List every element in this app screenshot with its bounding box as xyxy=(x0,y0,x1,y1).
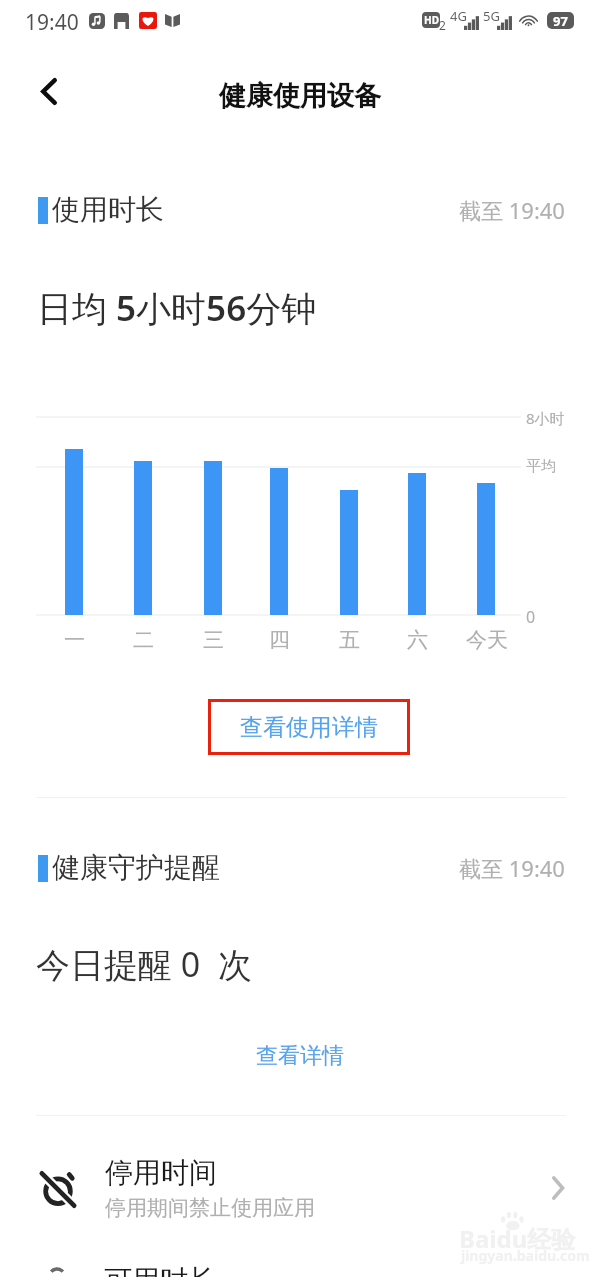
button[interactable]: 查看使用详情 xyxy=(208,699,410,755)
staticText: 可用时长 xyxy=(104,1263,216,1277)
staticText: 今天 xyxy=(466,627,508,653)
staticText: 健康使用设备 xyxy=(219,79,381,113)
staticText: 查看使用详情 xyxy=(240,713,378,742)
staticText: 二 xyxy=(133,627,154,653)
staticText: 停用时间 xyxy=(105,1155,217,1190)
staticText: 19:40 xyxy=(25,8,79,37)
staticText: 截至 19:40 xyxy=(459,195,565,225)
staticText: 2 xyxy=(439,17,446,33)
staticText: jingyan.baidu.com xyxy=(461,1246,590,1265)
staticText: 5G xyxy=(483,7,500,25)
staticText: 日均 5小时56分钟 xyxy=(37,284,317,332)
staticText: 截至 19:40 xyxy=(459,853,565,883)
button[interactable]: 停用时间 xyxy=(0,1136,600,1240)
staticText: 使用时长 xyxy=(52,192,164,227)
staticText: 六 xyxy=(407,627,428,653)
button[interactable]: Back xyxy=(26,68,72,114)
staticText: 8小时 xyxy=(526,408,565,428)
staticText: 五 xyxy=(339,627,360,653)
staticText: 查看详情 xyxy=(256,1042,344,1070)
staticText: 三 xyxy=(203,627,224,653)
button[interactable]: 查看详情 xyxy=(240,1037,360,1075)
staticText: 平均 xyxy=(526,457,556,476)
staticText: 0 xyxy=(526,606,536,628)
staticText: 停用期间禁止使用应用 xyxy=(105,1195,315,1221)
staticText: 97 xyxy=(553,12,568,29)
staticText: HD xyxy=(424,13,439,27)
staticText: 四 xyxy=(269,627,290,653)
staticText: 今日提醒 0 次 xyxy=(36,941,252,987)
staticText: 健康守护提醒 xyxy=(52,850,220,885)
staticText: 4G xyxy=(450,7,467,25)
staticText: 一 xyxy=(64,627,85,653)
staticText: Baidu经验 xyxy=(459,1222,576,1255)
